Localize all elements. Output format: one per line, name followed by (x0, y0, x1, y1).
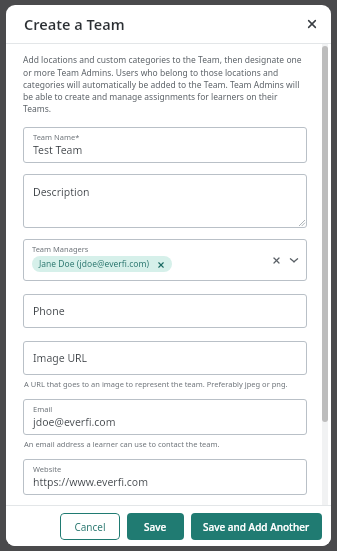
staticText: Image URL (33, 351, 88, 365)
button[interactable]: Team Name* (23, 127, 307, 163)
button[interactable]: Open dropdown (287, 253, 301, 267)
button[interactable]: Phone (23, 294, 307, 328)
staticText: Team Name* (33, 132, 80, 142)
staticText: Test Team (33, 143, 83, 157)
button[interactable]: Image URL (23, 341, 307, 375)
staticText: Save and Add Another (203, 520, 310, 534)
staticText: An email address a learner can use to co… (24, 439, 220, 449)
staticText: Email (33, 404, 53, 414)
staticText: Description (33, 185, 90, 199)
button[interactable]: Close (301, 13, 323, 35)
other: Remove Jane Doe (156, 260, 165, 269)
staticText: Create a Team (24, 14, 125, 34)
staticText: Add locations and custom categories to t… (23, 54, 307, 114)
staticText: jdoe@everfi.com (33, 415, 116, 429)
staticText: https://www.everfi.com (33, 475, 148, 489)
staticText: A URL that goes to an image to represent… (24, 379, 288, 389)
button[interactable]: Clear (269, 253, 283, 267)
staticText: Team Managers (32, 244, 89, 254)
button[interactable]: Description (23, 174, 307, 228)
button[interactable]: Team Managers (23, 239, 307, 281)
button[interactable]: Email (23, 399, 307, 435)
staticText: Jane Doe (jdoe@everfi.com) (39, 258, 149, 270)
button[interactable]: Cancel (60, 513, 120, 540)
button[interactable]: Jane Doe (jdoe@everfi.com) (32, 256, 172, 272)
button[interactable]: Website (23, 459, 307, 495)
staticText: Website (33, 464, 62, 474)
staticText: Cancel (74, 520, 106, 534)
button[interactable]: Save and Add Another (191, 513, 322, 540)
staticText: Save (144, 520, 167, 534)
staticText: Phone (33, 304, 65, 318)
button[interactable]: Save (127, 513, 184, 540)
